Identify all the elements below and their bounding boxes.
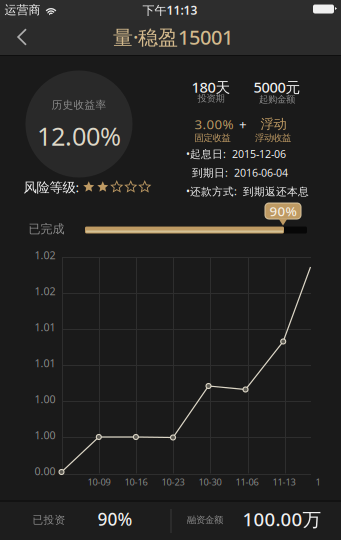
staticText: 量·稳盈15001 bbox=[113, 24, 233, 50]
staticText: 10-23 bbox=[161, 476, 184, 488]
staticText: 固定收益 bbox=[194, 132, 230, 144]
staticText: •还款方式: 到期返还本息 bbox=[186, 184, 309, 198]
staticText: 1.02 bbox=[34, 248, 55, 262]
staticText: 3.00% bbox=[194, 115, 233, 133]
staticText: 下午11:13 bbox=[142, 2, 197, 18]
staticText: 到期日: 2016-06-04 bbox=[186, 165, 288, 180]
staticText: 浮动收益 bbox=[255, 132, 291, 144]
staticText: 1.02 bbox=[34, 284, 55, 298]
staticText: 1.00 bbox=[34, 428, 55, 442]
staticText: •起息日: 2015-12-06 bbox=[186, 147, 286, 161]
button[interactable]: Back bbox=[2, 19, 42, 54]
staticText: 0.00 bbox=[34, 464, 55, 478]
staticText: 1 bbox=[315, 476, 320, 488]
staticText: 10-30 bbox=[198, 476, 221, 488]
staticText: 5000元 bbox=[253, 77, 300, 97]
staticText: 90% bbox=[269, 202, 296, 220]
staticText: 90% bbox=[97, 507, 132, 530]
staticText: 12.00% bbox=[37, 119, 121, 153]
staticText: 1.01 bbox=[34, 356, 55, 370]
staticText: 10-09 bbox=[87, 476, 110, 488]
staticText: 100.00万 bbox=[242, 507, 321, 531]
staticText: 历史收益率 bbox=[51, 98, 106, 111]
staticText: 1.00 bbox=[34, 392, 55, 406]
staticText: 融资金额 bbox=[187, 514, 223, 526]
staticText: 180天 bbox=[191, 77, 230, 97]
staticText: 1.01 bbox=[34, 320, 55, 334]
staticText: 风险等级: bbox=[23, 178, 79, 196]
staticText: 浮动 bbox=[260, 116, 286, 132]
staticText: 10-16 bbox=[124, 476, 147, 488]
staticText: 起购金额 bbox=[259, 94, 295, 105]
staticText: + bbox=[239, 115, 247, 133]
staticText: 已投资 bbox=[32, 513, 65, 526]
staticText: 11-13 bbox=[272, 476, 295, 488]
staticText: 11-06 bbox=[235, 476, 258, 488]
staticText: 投资期 bbox=[197, 93, 224, 104]
staticText: 已完成 bbox=[28, 222, 64, 236]
staticText: 运营商 bbox=[4, 3, 40, 17]
